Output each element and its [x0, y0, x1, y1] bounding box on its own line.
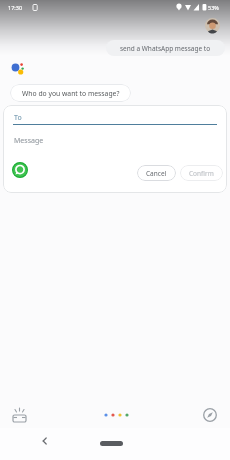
staticText: 17:30 — [8, 4, 23, 11]
staticText: Cancel — [146, 169, 167, 178]
button[interactable]: Confirm — [180, 165, 223, 181]
button[interactable]: Who do you want to message? — [10, 84, 131, 102]
button[interactable] — [10, 404, 30, 424]
button[interactable] — [12, 162, 28, 178]
staticText: Who do you want to message? — [22, 89, 120, 98]
button[interactable] — [40, 436, 50, 446]
staticText: send a WhatsApp message to — [120, 44, 211, 53]
button[interactable]: Cancel — [137, 165, 176, 181]
staticText: To — [14, 113, 22, 123]
staticText: 53% — [208, 4, 219, 11]
staticText: Confirm — [189, 169, 214, 178]
button[interactable]: send a WhatsApp message to — [106, 40, 225, 56]
button[interactable] — [100, 409, 132, 421]
button[interactable] — [202, 407, 218, 423]
staticText: Message — [14, 136, 44, 146]
button[interactable] — [100, 441, 123, 446]
